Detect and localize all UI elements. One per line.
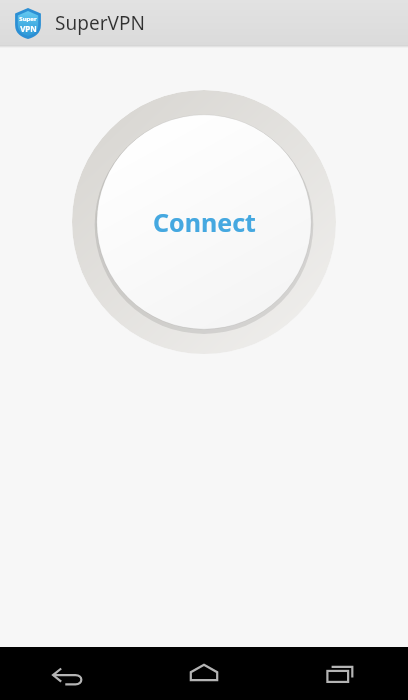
staticText: VPN bbox=[20, 23, 37, 34]
button[interactable]: Connect bbox=[72, 90, 336, 354]
button[interactable]: Home bbox=[136, 647, 272, 700]
staticText: Super bbox=[19, 15, 37, 23]
button[interactable]: Recent apps bbox=[272, 647, 408, 700]
staticText: Connect bbox=[153, 205, 256, 239]
staticText: SuperVPN bbox=[55, 10, 145, 36]
button[interactable]: Back bbox=[0, 647, 136, 700]
